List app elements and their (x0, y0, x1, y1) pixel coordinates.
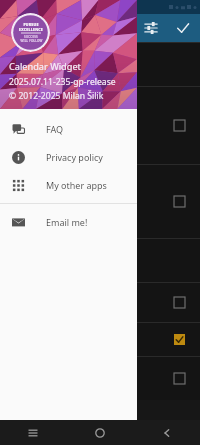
button[interactable]: Toggle (174, 373, 185, 384)
button[interactable]: My other apps (0, 171, 137, 199)
button[interactable]: Tune (140, 17, 162, 39)
staticText: EXCELLENCE (19, 27, 43, 32)
button[interactable]: Recents (13, 420, 53, 445)
button[interactable]: FAQ (0, 115, 137, 143)
staticText: SUCCESS (24, 35, 38, 39)
button[interactable]: App logo (11, 13, 50, 52)
staticText: FAQ (46, 123, 64, 135)
button[interactable] (0, 238, 200, 282)
button[interactable]: Toggle (0, 282, 200, 322)
button[interactable] (0, 42, 200, 86)
button[interactable]: Toggle (174, 334, 185, 345)
staticText: PURSUE (23, 22, 39, 27)
button[interactable]: Home (80, 420, 120, 445)
button[interactable]: Email me! (0, 208, 137, 236)
button[interactable]: Privacy policy (0, 143, 137, 171)
button[interactable]: Toggle (174, 196, 185, 207)
button[interactable]: Toggle (174, 120, 185, 131)
button[interactable]: Back (147, 420, 187, 445)
button[interactable]: Toggle (174, 297, 185, 308)
button[interactable]: Contrast (108, 17, 130, 39)
button[interactable]: Confirm (172, 17, 194, 39)
staticText: Calendar Widget (9, 60, 81, 73)
staticText: My other apps (46, 179, 107, 191)
button[interactable]: Toggle (0, 322, 200, 356)
button[interactable]: Toggle (0, 164, 200, 238)
button[interactable]: Toggle (0, 86, 200, 164)
staticText: WILL FOLLOW (20, 39, 43, 43)
staticText: 2025.07.11-235-gp-release (9, 76, 116, 88)
staticText: Email me! (46, 216, 88, 228)
button[interactable]: Toggle (0, 356, 200, 400)
staticText: © 2012-2025 Milan Šilik (9, 90, 104, 102)
staticText: Privacy policy (46, 151, 103, 163)
